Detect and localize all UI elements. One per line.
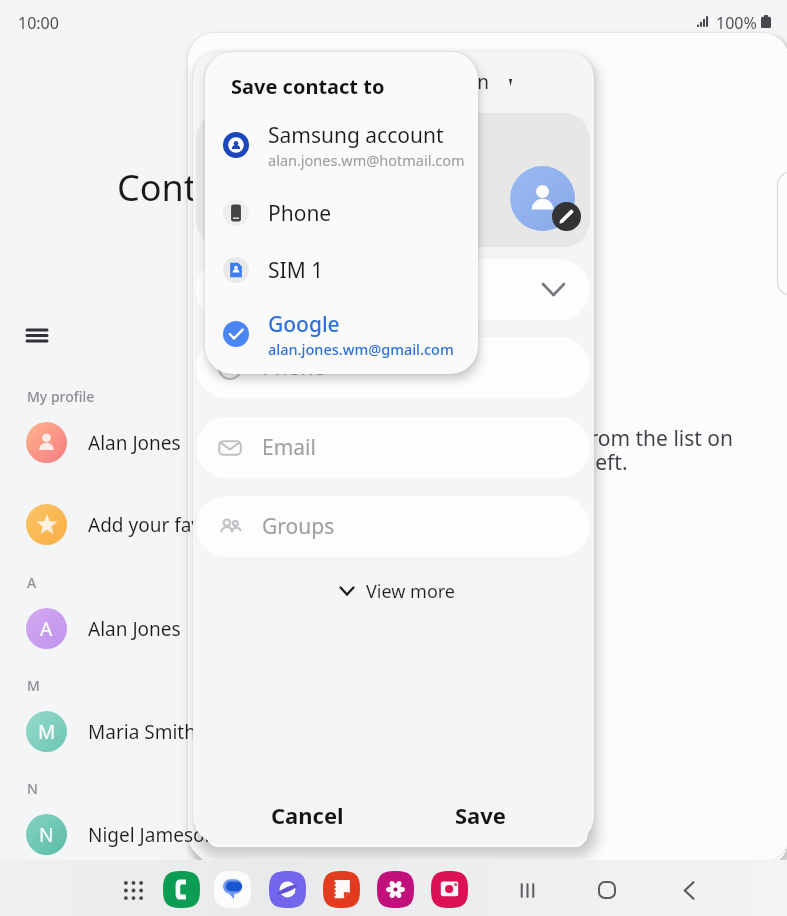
button[interactable]: Gallery bbox=[377, 871, 414, 908]
staticText: 10:00 bbox=[18, 12, 59, 34]
button[interactable]: Back bbox=[671, 872, 707, 908]
button[interactable]: SIM 1 bbox=[205, 242, 478, 298]
button[interactable]: Samsung accoun bbox=[337, 62, 512, 102]
button[interactable]: Cancel bbox=[227, 788, 388, 842]
staticText: Save contact to bbox=[231, 73, 385, 100]
button[interactable]: Internet bbox=[269, 871, 306, 908]
staticText: SIM 1 bbox=[268, 256, 324, 285]
staticText: Nigel Jameson bbox=[88, 822, 217, 848]
staticText: Select a contact from the list on bbox=[423, 424, 734, 453]
staticText: N bbox=[39, 822, 54, 848]
button[interactable]: Alan Jones bbox=[26, 422, 306, 463]
button[interactable]: Google bbox=[205, 306, 478, 362]
button[interactable]: M bbox=[26, 711, 306, 752]
staticText: Cancel bbox=[271, 800, 344, 830]
staticText: Groups bbox=[262, 512, 335, 541]
button[interactable]: Groups bbox=[196, 496, 590, 557]
button[interactable]: Phone bbox=[205, 185, 478, 241]
staticText: Maria Smith bbox=[88, 719, 196, 745]
staticText: A bbox=[27, 573, 37, 592]
button[interactable] bbox=[196, 259, 590, 320]
staticText: M bbox=[38, 719, 56, 745]
button[interactable]: Home bbox=[589, 872, 625, 908]
staticText: Phone bbox=[262, 353, 326, 382]
button[interactable]: Camera bbox=[431, 871, 468, 908]
staticText: Email bbox=[262, 433, 316, 462]
button[interactable]: Phone bbox=[196, 337, 590, 398]
staticText: 100% bbox=[716, 12, 757, 34]
staticText: Samsung account bbox=[268, 121, 444, 150]
staticText: alan.jones.wm@hotmail.com bbox=[268, 150, 465, 170]
staticText: Contacts bbox=[117, 163, 265, 212]
button[interactable]: Save bbox=[400, 788, 561, 842]
button[interactable]: N bbox=[26, 814, 306, 855]
button[interactable]: Samsung account bbox=[205, 117, 478, 173]
button[interactable]: Contact photo bbox=[510, 166, 575, 231]
staticText: Google bbox=[268, 310, 340, 339]
button[interactable]: Add your favourites bbox=[26, 504, 306, 545]
staticText: Samsung accoun bbox=[337, 69, 489, 95]
staticText: My profile bbox=[27, 387, 95, 406]
button[interactable]: Phone bbox=[163, 871, 200, 908]
staticText: View more bbox=[366, 579, 456, 604]
staticText: Add your favourites bbox=[88, 512, 264, 538]
button[interactable]: Messages bbox=[214, 871, 251, 908]
staticText: M bbox=[27, 676, 40, 695]
staticText: alan.jones.wm@gmail.com bbox=[268, 339, 454, 359]
button[interactable]: Email bbox=[196, 417, 590, 478]
staticText: N bbox=[27, 779, 38, 798]
button[interactable]: Recent apps bbox=[509, 872, 545, 908]
staticText: Save bbox=[455, 800, 506, 830]
button[interactable]: Menu bbox=[19, 318, 54, 353]
staticText: Alan Jones bbox=[88, 616, 181, 642]
staticText: Phone bbox=[268, 199, 332, 228]
button[interactable]: Apps bbox=[117, 874, 150, 907]
staticText: A bbox=[40, 616, 53, 642]
button[interactable]: A bbox=[26, 608, 306, 649]
button[interactable]: View more bbox=[334, 574, 456, 608]
staticText: the left. bbox=[552, 448, 628, 477]
staticText: Alan Jones bbox=[88, 430, 181, 456]
button[interactable]: Edit photo bbox=[552, 202, 581, 231]
button[interactable]: Notes bbox=[323, 871, 360, 908]
